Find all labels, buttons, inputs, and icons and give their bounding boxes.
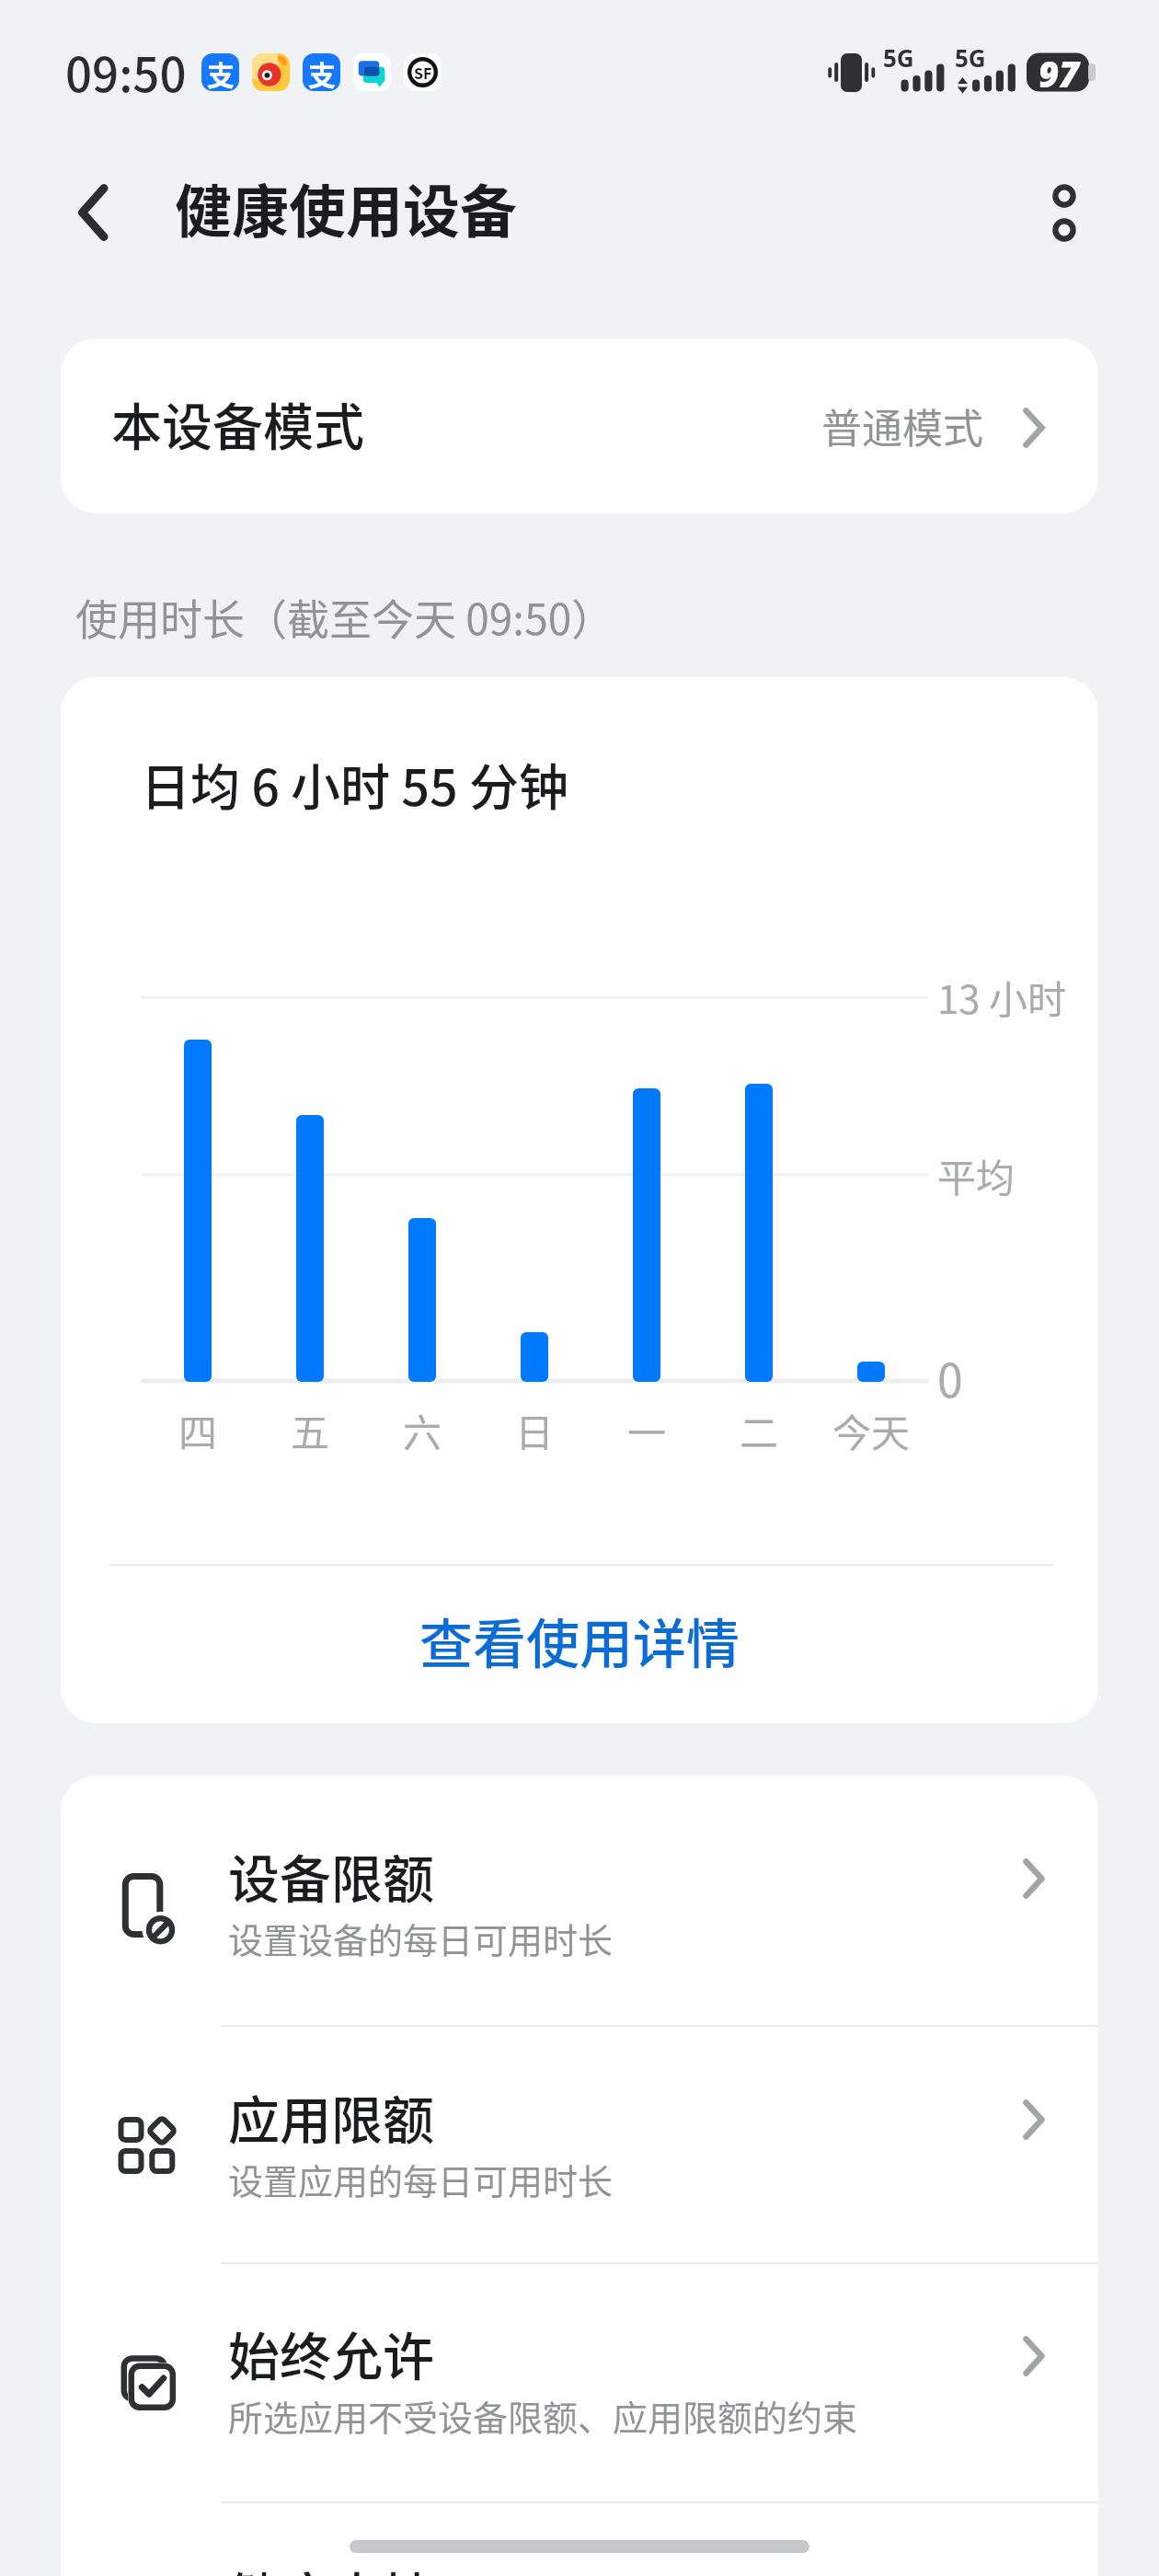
staticText: 健康支持 bbox=[228, 2556, 434, 2576]
staticText: 支 bbox=[308, 53, 336, 91]
button[interactable]: 始终允许 bbox=[61, 2262, 1098, 2501]
button[interactable]: More options bbox=[1024, 173, 1105, 254]
button[interactable]: 设备限额 bbox=[61, 1776, 1098, 2025]
staticText: 设置设备的每日可用时长 bbox=[228, 1913, 614, 1963]
staticText: 应用限额 bbox=[228, 2079, 434, 2154]
staticText: 0 bbox=[937, 1344, 963, 1410]
staticText: 09:50 bbox=[65, 38, 187, 106]
staticText: 查看使用详情 bbox=[419, 1602, 740, 1679]
staticText: 支 bbox=[207, 53, 235, 91]
staticText: 本设备模式 bbox=[111, 386, 365, 460]
button[interactable]: 应用限额 bbox=[61, 2025, 1098, 2262]
staticText: SF bbox=[414, 62, 432, 83]
staticText: 始终允许 bbox=[228, 2316, 434, 2390]
staticText: 97 bbox=[1039, 50, 1080, 98]
staticText: 所选应用不受设备限额、应用限额的约束 bbox=[228, 2390, 858, 2441]
staticText: 设备限额 bbox=[228, 1838, 434, 1913]
staticText: 健康使用设备 bbox=[175, 167, 518, 249]
button[interactable]: 查看使用详情 bbox=[61, 1561, 1098, 1719]
staticText: 五 bbox=[255, 1402, 365, 1458]
staticText: 二 bbox=[704, 1402, 814, 1458]
staticText: 5G bbox=[955, 41, 986, 74]
staticText: 设置应用的每日可用时长 bbox=[228, 2154, 614, 2204]
staticText: 使用时长（截至今天 09:50） bbox=[75, 586, 614, 648]
staticText: 今天 bbox=[816, 1402, 926, 1458]
button[interactable]: 本设备模式 bbox=[61, 339, 1098, 513]
staticText: 六 bbox=[367, 1402, 477, 1458]
staticText: 平均 bbox=[937, 1147, 1016, 1203]
staticText: 13 小时 bbox=[937, 969, 1067, 1025]
staticText: 四 bbox=[143, 1402, 253, 1458]
button[interactable]: Back bbox=[52, 171, 133, 252]
staticText: 一 bbox=[591, 1402, 702, 1458]
staticText: 日 bbox=[479, 1402, 590, 1458]
staticText: 5G bbox=[883, 41, 914, 74]
staticText: 日均 6 小时 55 分钟 bbox=[141, 748, 568, 820]
staticText: 普通模式 bbox=[821, 397, 983, 455]
